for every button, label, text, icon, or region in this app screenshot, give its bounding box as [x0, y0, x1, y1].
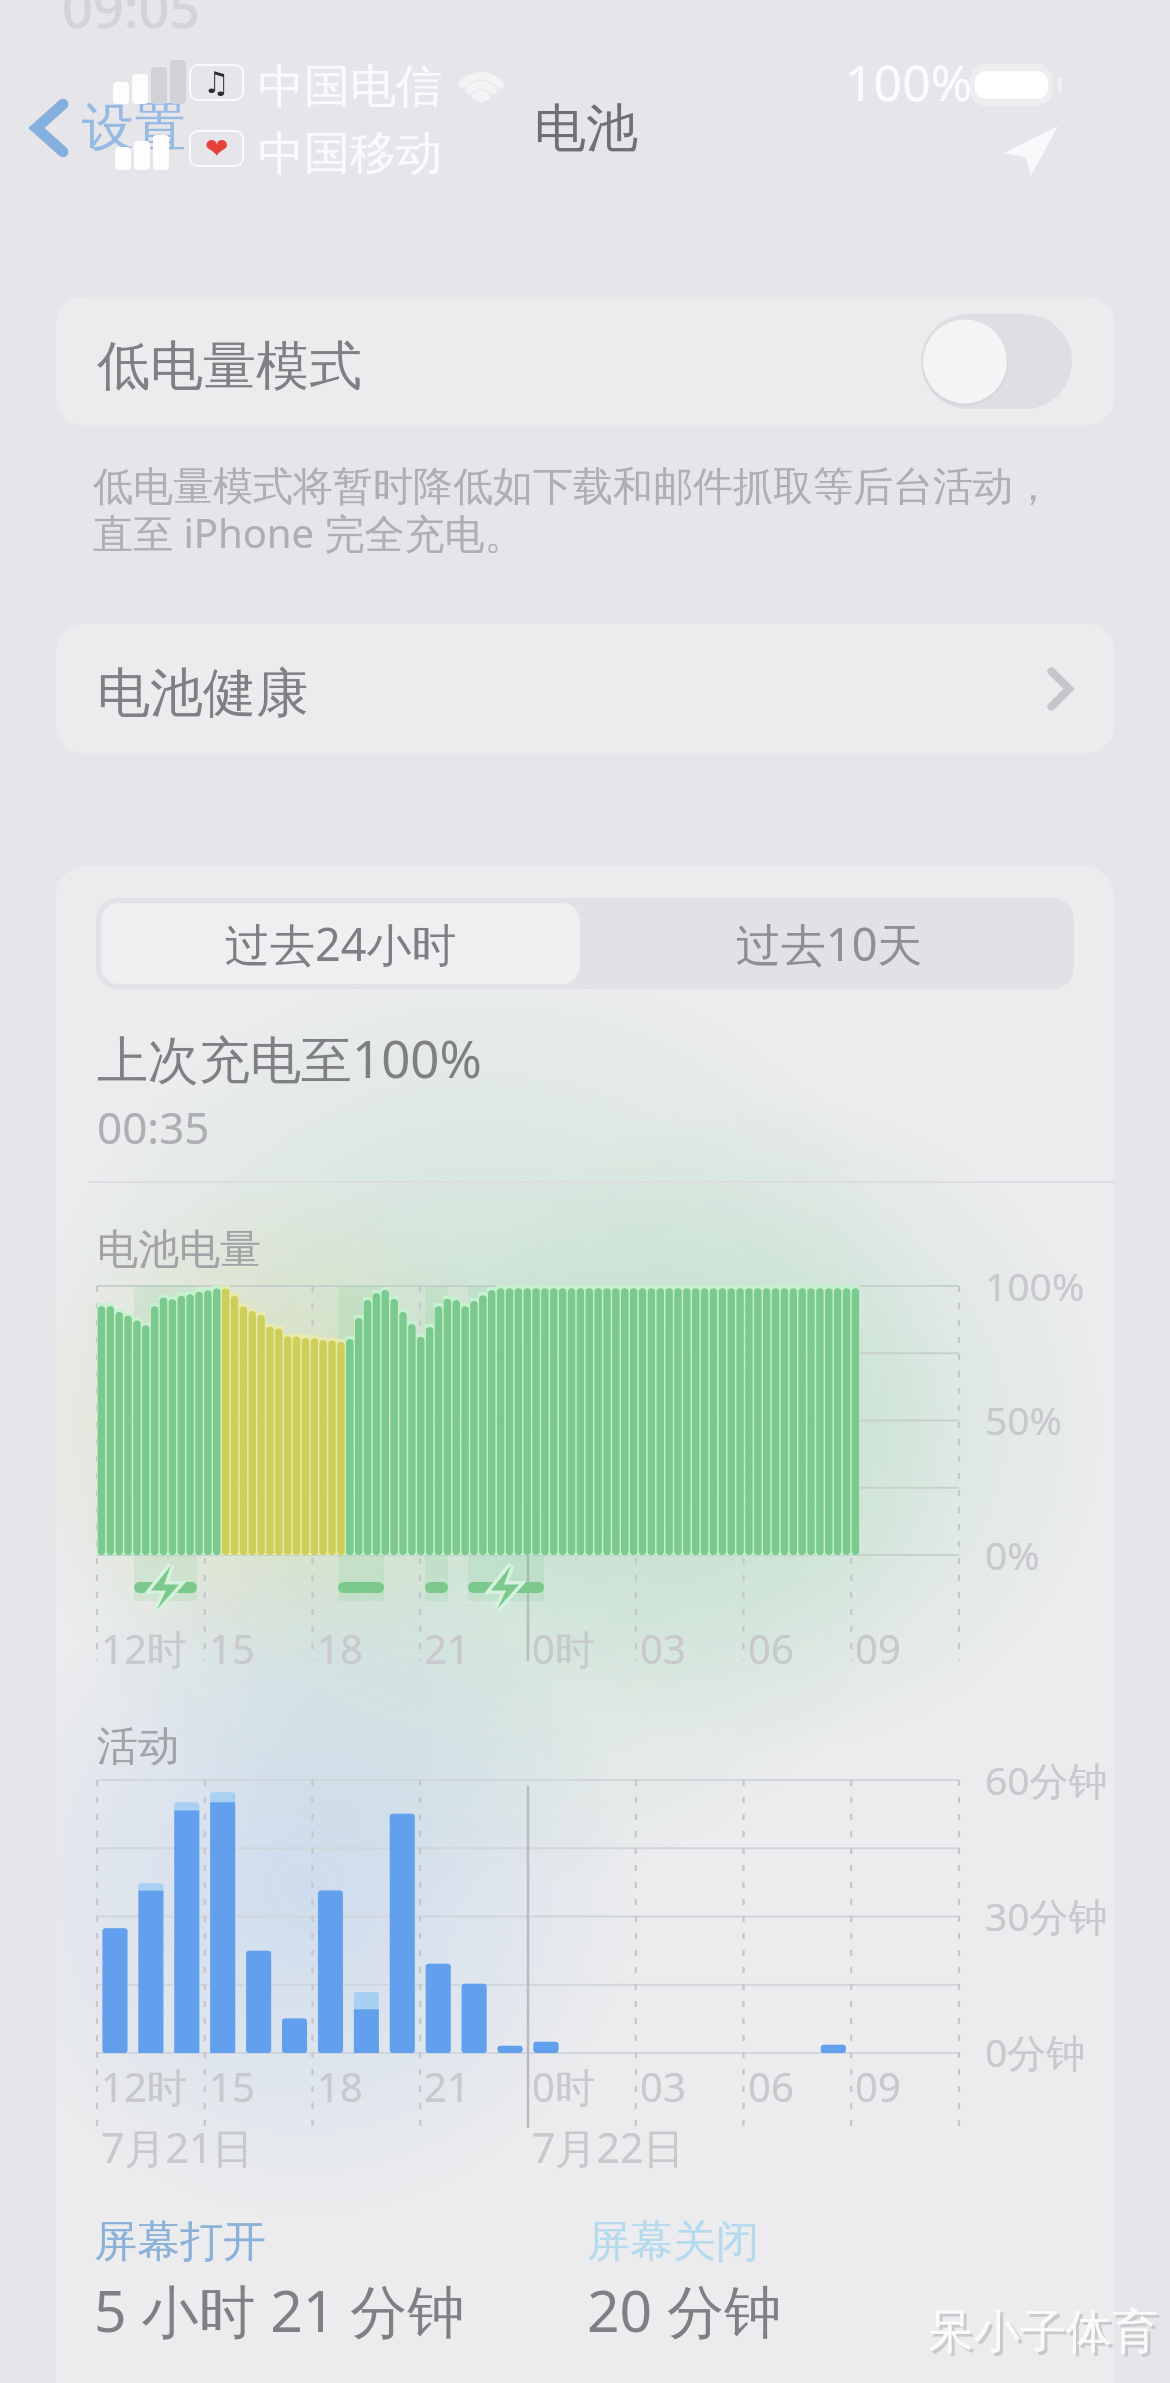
staticText: ❤ — [205, 132, 229, 165]
staticText: 电池电量 — [97, 1224, 261, 1276]
staticText: 06 — [748, 2059, 794, 2113]
button[interactable]: 过去24小时 — [101, 903, 580, 984]
staticText: 50% — [985, 1393, 1063, 1446]
staticText: 过去24小时 — [225, 913, 457, 974]
staticText: ♫ — [203, 65, 230, 100]
staticText: 0分钟 — [985, 2025, 1086, 2078]
button[interactable]: 过去10天 — [585, 898, 1074, 989]
staticText: 09 — [855, 2059, 901, 2113]
staticText: 呆小子体育 — [928, 2303, 1158, 2361]
staticText: 00:35 — [97, 1097, 210, 1157]
staticText: 03 — [640, 1621, 686, 1675]
staticText: 电池健康 — [97, 660, 309, 727]
staticText: 21 — [424, 2059, 470, 2113]
staticText: 100% — [985, 1259, 1085, 1312]
staticText: 7月22日 — [532, 2119, 685, 2175]
staticText: 低电量模式 — [97, 333, 362, 400]
staticText: 09:05 — [62, 0, 201, 44]
staticText: 100% — [845, 48, 973, 116]
staticText: 呆小子体育 — [931, 2306, 1161, 2364]
staticText: 18 — [317, 2059, 363, 2113]
staticText: 12时 — [101, 2059, 187, 2114]
staticText: 06 — [748, 1621, 794, 1675]
staticText: 15 — [209, 2059, 255, 2113]
staticText: 上次充电至100% — [97, 1023, 482, 1093]
staticText: 过去10天 — [736, 913, 923, 974]
staticText: 屏幕打开 — [94, 2215, 266, 2269]
button[interactable]: Low Power Mode toggle, off — [921, 314, 1072, 409]
staticText: 20 分钟 — [587, 2271, 782, 2349]
staticText: 中国电信 — [258, 58, 442, 116]
staticText: 60分钟 — [985, 1753, 1108, 1806]
staticText: 30分钟 — [985, 1889, 1108, 1942]
staticText: 电池 — [534, 96, 638, 162]
staticText: 15 — [209, 1621, 255, 1675]
staticText: 03 — [640, 2059, 686, 2113]
button[interactable]: Back to 设置 — [21, 87, 198, 169]
other: Location services active — [1004, 126, 1058, 176]
staticText: 09 — [855, 1621, 901, 1675]
staticText: 21 — [424, 1621, 470, 1675]
staticText: 0时 — [532, 1621, 595, 1676]
staticText: 5 小时 21 分钟 — [94, 2271, 465, 2349]
staticText: 屏幕关闭 — [587, 2215, 759, 2269]
button[interactable]: 电池健康 — [56, 624, 1114, 753]
staticText: 设置 — [82, 95, 186, 161]
staticText: 低电量模式将暂时降低如下载和邮件抓取等后台活动，直至 iPhone 完全充电。 — [93, 461, 1074, 560]
staticText: 12时 — [101, 1621, 187, 1676]
staticText: 中国移动 — [258, 125, 442, 183]
staticText: 活动 — [97, 1721, 179, 1773]
staticText: 0时 — [532, 2059, 595, 2114]
button[interactable]: 低电量模式 — [56, 297, 1114, 425]
staticText: 7月21日 — [101, 2119, 254, 2175]
staticText: 0% — [985, 1528, 1040, 1581]
staticText: 18 — [317, 1621, 363, 1675]
